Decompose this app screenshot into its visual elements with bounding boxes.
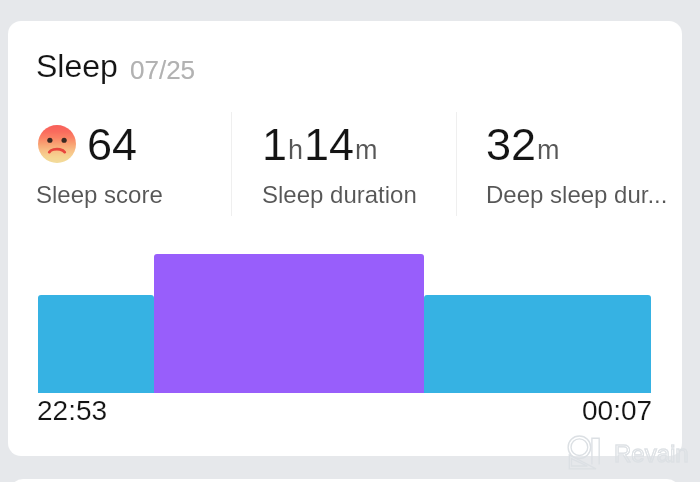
button[interactable]: 1 (262, 119, 462, 211)
staticText: Sleep score (36, 181, 163, 208)
staticText: m (355, 135, 378, 165)
other: Revain watermark (567, 428, 642, 466)
other: Poor sleep score (38, 125, 76, 163)
staticText: 07/25 (130, 55, 196, 84)
staticText: 1 (262, 119, 288, 169)
staticText: Sleep duration (262, 181, 417, 208)
button[interactable]: Sleep (8, 21, 682, 456)
staticText: h (288, 135, 304, 165)
staticText: Revain (614, 440, 689, 467)
button[interactable]: Poor sleep score (38, 119, 230, 211)
staticText: 00:07 (582, 395, 653, 426)
staticText: 32 (486, 119, 537, 169)
staticText: m (537, 135, 560, 165)
staticText: Sleep (36, 48, 118, 84)
staticText: 64 (87, 119, 138, 169)
staticText: 22:53 (37, 395, 108, 426)
button[interactable] (10, 479, 680, 482)
button[interactable]: 32 (486, 119, 682, 211)
staticText: 14 (304, 119, 355, 169)
staticText: Deep sleep dur... (486, 181, 668, 208)
